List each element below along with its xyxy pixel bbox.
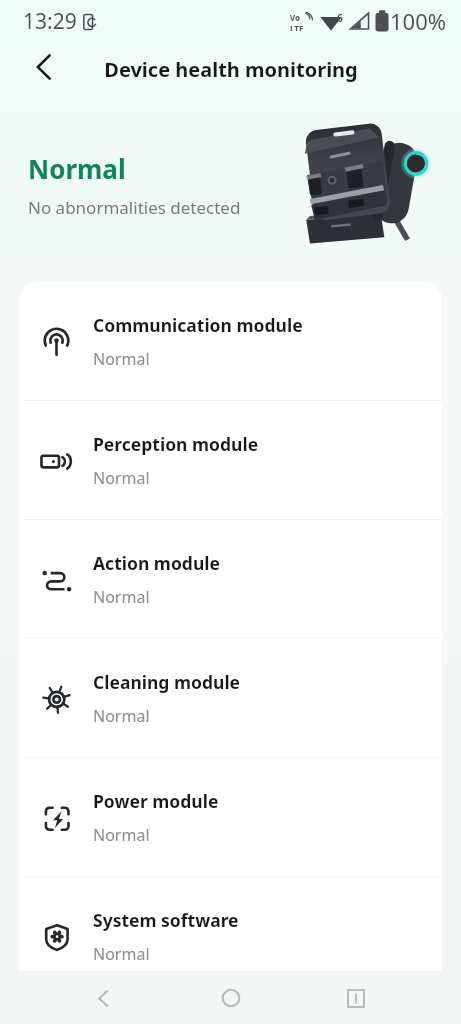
button[interactable]: Back	[21, 45, 65, 89]
staticText: No abnormalities detected	[28, 196, 241, 219]
staticText: 6	[337, 11, 343, 25]
staticText: Perception module	[93, 432, 259, 456]
staticText: 100%	[390, 6, 447, 36]
staticText: Action module	[93, 551, 220, 575]
staticText: 13:29	[23, 7, 77, 36]
staticText: Communication module	[93, 313, 303, 337]
staticText: System software	[93, 908, 239, 932]
staticText: Normal	[93, 348, 150, 370]
button[interactable]: Back	[81, 976, 125, 1020]
button[interactable]: Power module	[19, 758, 442, 876]
staticText: Vo	[290, 12, 301, 23]
button[interactable]: Cleaning module	[19, 639, 442, 757]
staticText: Normal	[93, 586, 150, 608]
button[interactable]: Recent apps	[334, 976, 378, 1020]
staticText: Normal	[93, 943, 150, 965]
button[interactable]: System software	[19, 877, 442, 995]
button[interactable]: Communication module	[19, 282, 442, 400]
staticText: Device health monitoring	[104, 56, 358, 83]
staticText: LTE	[290, 23, 304, 31]
staticText: Normal	[93, 705, 150, 727]
staticText: Cleaning module	[93, 670, 241, 694]
staticText: Normal	[93, 467, 150, 489]
staticText: Normal	[93, 824, 150, 846]
button[interactable]: Home	[209, 976, 253, 1020]
staticText: Power module	[93, 789, 219, 813]
button[interactable]: Action module	[19, 520, 442, 638]
button[interactable]: Perception module	[19, 401, 442, 519]
staticText: Normal	[28, 151, 126, 186]
